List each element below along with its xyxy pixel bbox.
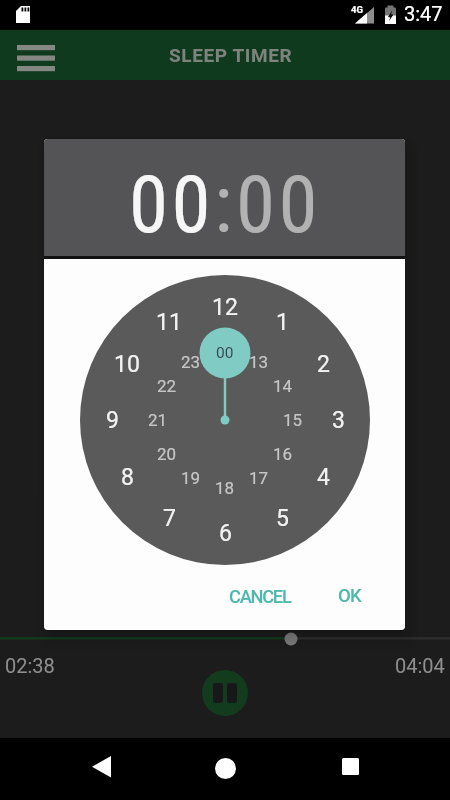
staticText: : bbox=[214, 159, 236, 252]
staticText: 10 bbox=[114, 351, 140, 378]
staticText: 04:04 bbox=[395, 654, 445, 674]
staticText: 12 bbox=[212, 294, 238, 321]
button[interactable] bbox=[202, 670, 248, 716]
staticText: 20 bbox=[157, 444, 177, 464]
button[interactable] bbox=[8, 34, 64, 82]
staticText: 15 bbox=[283, 410, 303, 430]
staticText: 23 bbox=[181, 352, 201, 372]
button[interactable] bbox=[80, 275, 370, 565]
staticText: 4 bbox=[317, 464, 330, 491]
staticText: 9 bbox=[106, 407, 119, 434]
button[interactable] bbox=[0, 628, 450, 648]
staticText: 3 bbox=[332, 407, 345, 434]
staticText: 6 bbox=[219, 520, 232, 547]
button[interactable]: OK bbox=[326, 577, 373, 615]
staticText: 22 bbox=[157, 376, 177, 396]
staticText: 3:47 bbox=[404, 2, 443, 25]
staticText: 2 bbox=[317, 351, 330, 378]
staticText: OK bbox=[338, 585, 361, 607]
staticText: 13 bbox=[249, 352, 269, 372]
staticText: 00 bbox=[216, 344, 234, 362]
staticText: 1 bbox=[276, 309, 289, 336]
staticText: 02:38 bbox=[5, 654, 55, 674]
staticText: 11 bbox=[156, 309, 182, 336]
staticText: CANCEL bbox=[229, 586, 291, 607]
staticText: 21 bbox=[148, 410, 168, 430]
button[interactable] bbox=[201, 744, 249, 792]
staticText: SLEEP TIMER bbox=[169, 44, 293, 66]
button[interactable] bbox=[77, 743, 125, 791]
staticText: 14 bbox=[273, 376, 293, 396]
staticText: 7 bbox=[163, 505, 176, 532]
staticText: 8 bbox=[121, 464, 134, 491]
staticText: 00 bbox=[129, 159, 214, 252]
staticText: 17 bbox=[249, 468, 269, 488]
staticText: 4G bbox=[351, 4, 363, 15]
staticText: 16 bbox=[273, 444, 293, 464]
button[interactable] bbox=[326, 742, 374, 790]
staticText: 18 bbox=[215, 478, 235, 498]
staticText: 19 bbox=[181, 468, 201, 488]
button[interactable]: CANCEL bbox=[215, 577, 305, 615]
staticText: 5 bbox=[276, 505, 289, 532]
staticText: 00 bbox=[236, 159, 321, 252]
